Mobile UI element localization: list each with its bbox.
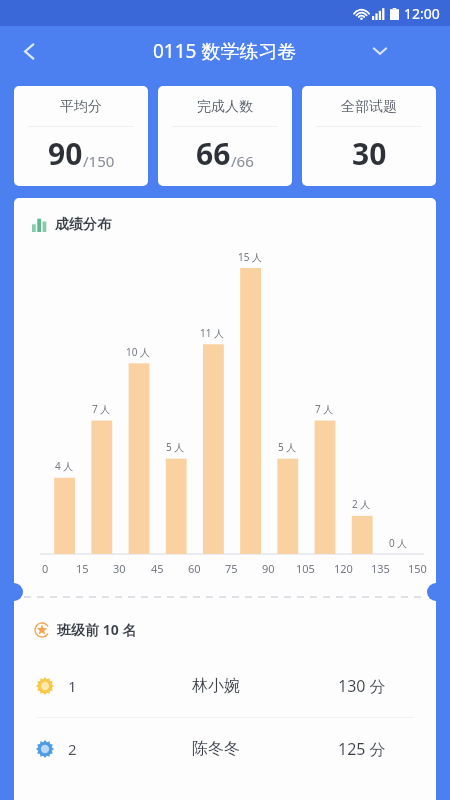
staticText: 15 人: [238, 250, 263, 264]
staticText: 完成人数: [197, 98, 253, 116]
staticText: 0115 数学练习卷: [153, 38, 297, 64]
staticText: 150: [408, 561, 427, 576]
button[interactable]: 全部试题: [302, 86, 436, 186]
staticText: 11 人: [200, 326, 225, 340]
staticText: 2: [68, 739, 77, 759]
staticText: 成绩分布: [55, 216, 111, 234]
staticText: 125 分: [338, 738, 414, 760]
staticText: 0 人: [389, 536, 408, 550]
staticText: 105: [296, 561, 315, 576]
staticText: 66: [196, 133, 231, 174]
button[interactable]: 1: [14, 655, 436, 717]
staticText: 135: [371, 561, 390, 576]
staticText: 130 分: [338, 675, 414, 697]
button[interactable]: 平均分: [14, 86, 148, 186]
staticText: 7 人: [92, 402, 111, 416]
staticText: 林小婉: [192, 676, 240, 696]
staticText: 120: [334, 561, 353, 576]
staticText: 全部试题: [341, 98, 397, 116]
staticText: 5 人: [278, 440, 297, 454]
staticText: 60: [188, 561, 201, 576]
staticText: 90: [48, 133, 83, 174]
staticText: 12:00: [404, 4, 440, 23]
staticText: 1: [68, 676, 77, 696]
button[interactable]: 2: [14, 718, 436, 780]
staticText: 5 人: [166, 440, 185, 454]
staticText: 班级前 10 名: [57, 620, 137, 639]
staticText: 30: [352, 133, 387, 174]
button[interactable]: Expand: [362, 33, 398, 69]
staticText: /66: [231, 151, 254, 171]
staticText: 75: [225, 561, 238, 576]
staticText: 平均分: [60, 98, 102, 116]
staticText: 7 人: [315, 402, 334, 416]
button[interactable]: Back: [8, 30, 50, 72]
staticText: 4 人: [55, 459, 74, 473]
staticText: 10 人: [126, 345, 151, 359]
staticText: 45: [151, 561, 164, 576]
staticText: 15: [76, 561, 89, 576]
staticText: 0: [42, 561, 49, 576]
staticText: 90: [262, 561, 275, 576]
staticText: 2 人: [352, 497, 371, 511]
staticText: 陈冬冬: [192, 739, 240, 759]
staticText: 30: [113, 561, 126, 576]
button[interactable]: 完成人数: [158, 86, 292, 186]
staticText: /150: [83, 151, 115, 171]
